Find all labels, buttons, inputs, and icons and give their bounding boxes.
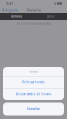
staticText: Salida xyxy=(47,15,54,18)
staticText: 9:41 xyxy=(6,1,13,6)
staticText: Entrada xyxy=(11,15,22,18)
button[interactable]: Solicitar cambio de horario xyxy=(3,88,64,100)
staticText: ıl xyxy=(54,1,56,6)
button[interactable]: Refrescar horario xyxy=(3,76,64,88)
button[interactable]: Entrada xyxy=(0,13,33,20)
button[interactable]: Cancelar xyxy=(3,102,64,115)
staticText: Refrescar horario xyxy=(22,80,45,84)
staticText: No tiene horas asignadas xyxy=(16,22,50,25)
button[interactable]: Salida xyxy=(33,13,67,20)
staticText: Solicitar cambio de horario xyxy=(15,92,51,96)
staticText: Horario xyxy=(28,70,38,73)
staticText: Horario xyxy=(26,7,40,13)
staticText: Cancelar xyxy=(27,107,40,111)
button[interactable]: Agenda xyxy=(0,7,20,13)
staticText: Agenda xyxy=(5,7,18,13)
